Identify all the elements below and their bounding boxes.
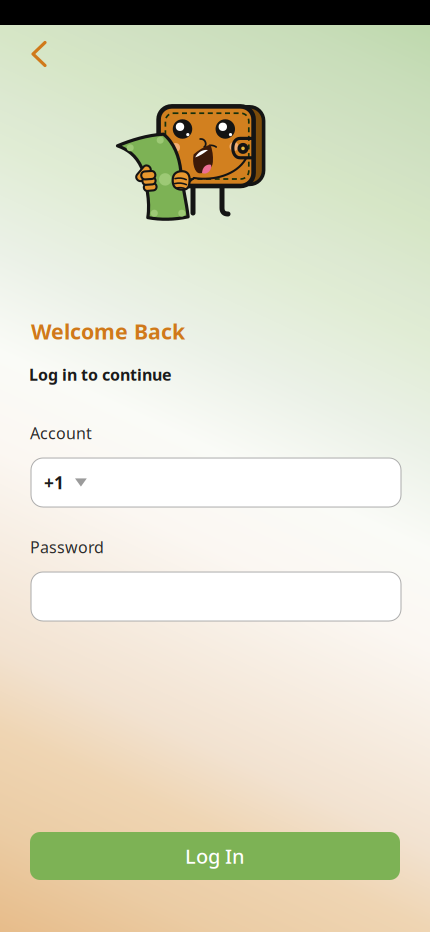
button[interactable]: [31, 572, 401, 621]
staticText: +1: [44, 471, 64, 494]
button[interactable]: Back: [17, 32, 61, 76]
staticText: Password: [30, 536, 104, 558]
button[interactable]: +1: [31, 458, 401, 507]
button[interactable]: Log In: [30, 832, 400, 880]
staticText: Log In: [185, 843, 245, 869]
staticText: Account: [30, 422, 92, 444]
staticText: Log in to continue: [29, 364, 172, 385]
staticText: Welcome Back: [31, 317, 185, 345]
